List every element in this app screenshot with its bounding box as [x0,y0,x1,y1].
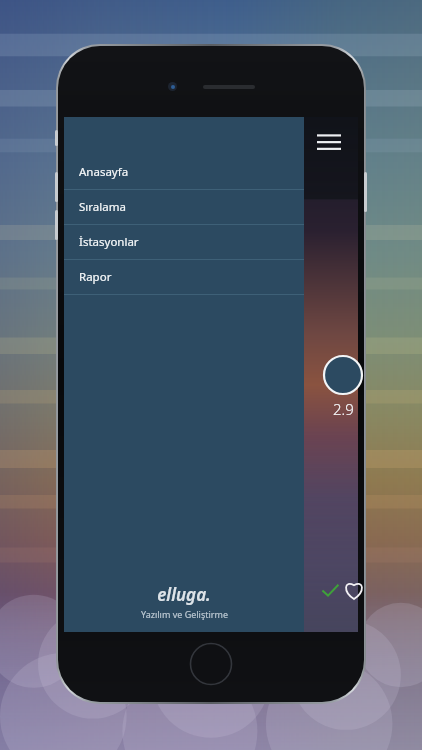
staticText: Sıralama [79,199,126,215]
staticText: Anasayfa [79,164,129,180]
button[interactable]: Home [189,642,233,686]
button[interactable]: Rapor [64,260,304,295]
button[interactable]: Power [364,172,367,212]
staticText: 2.9 [333,399,354,419]
button[interactable]: Menu [312,125,346,159]
button[interactable]: Favorite [342,578,366,602]
staticText: Yazılım ve Geliştirme [141,608,228,620]
button[interactable]: Completed [320,580,340,600]
staticText: Rapor [79,269,112,285]
button[interactable]: Volume up [55,172,58,202]
staticText: elluga. [157,583,211,606]
button[interactable]: Sıralama [64,190,304,225]
button[interactable]: Volume down [55,210,58,240]
staticText: İstasyonlar [79,234,139,250]
button[interactable]: Silent switch [55,130,58,146]
button[interactable]: Anasayfa [64,155,304,190]
button[interactable]: İstasyonlar [64,225,304,260]
